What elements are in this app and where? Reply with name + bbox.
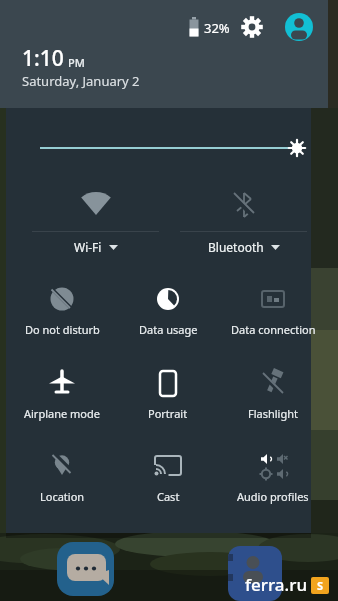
staticText: 32% bbox=[204, 19, 230, 37]
staticText: Bluetooth bbox=[208, 239, 264, 255]
staticText: Portrait bbox=[148, 406, 188, 421]
button[interactable] bbox=[228, 546, 282, 601]
button[interactable]: Bluetooth bbox=[180, 185, 307, 263]
button[interactable]: Airplane mode bbox=[9, 363, 115, 429]
button[interactable]: Cast bbox=[115, 446, 221, 512]
staticText: Wi-Fi bbox=[74, 239, 102, 255]
button[interactable] bbox=[26, 134, 311, 162]
button[interactable] bbox=[57, 542, 114, 596]
staticText: PM bbox=[68, 55, 85, 70]
button[interactable]: Data usage bbox=[115, 279, 221, 345]
staticText: Location bbox=[40, 489, 85, 504]
button[interactable]: Do not disturb bbox=[9, 279, 115, 345]
staticText: Audio profiles bbox=[237, 489, 309, 504]
staticText: Airplane mode bbox=[24, 406, 100, 421]
button[interactable]: Audio profiles bbox=[220, 446, 326, 512]
button[interactable]: Wi-Fi bbox=[32, 185, 159, 263]
button[interactable] bbox=[285, 13, 313, 41]
staticText: S bbox=[317, 578, 324, 593]
staticText: Data connection bbox=[231, 322, 316, 337]
staticText: ferra.ru bbox=[245, 573, 308, 596]
staticText: Cast bbox=[157, 489, 180, 504]
staticText: 1:10 bbox=[22, 44, 64, 73]
button[interactable]: Flashlight bbox=[220, 363, 326, 429]
staticText: Flashlight bbox=[248, 406, 298, 421]
button[interactable] bbox=[241, 16, 263, 38]
button[interactable]: Portrait bbox=[115, 363, 221, 429]
staticText: Data usage bbox=[139, 322, 198, 337]
staticText: Do not disturb bbox=[25, 322, 100, 337]
button[interactable]: Data connection bbox=[220, 279, 326, 345]
staticText: Saturday, January 2 bbox=[22, 72, 140, 90]
button[interactable]: Location bbox=[9, 446, 115, 512]
